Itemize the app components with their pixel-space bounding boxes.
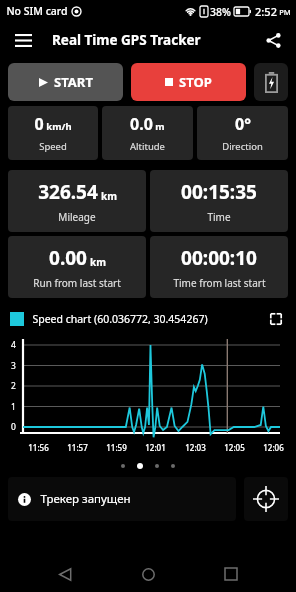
staticText: 1 [11,401,16,413]
button[interactable]: Back [47,556,83,592]
staticText: 12:03 [185,442,206,453]
button[interactable]: Battery optimization [254,63,288,101]
staticText: km [101,189,117,203]
button[interactable]: 0.0 [102,106,193,160]
button[interactable]: Трекер запущен [8,477,236,521]
staticText: 12:06 [263,442,284,453]
staticText: STOP [179,73,212,91]
staticText: 0° [235,113,251,135]
staticText: Real Time GPS Tracker [52,31,201,49]
staticText: PM [279,7,291,17]
button[interactable]: My location [244,477,288,521]
button[interactable]: 0° [197,106,288,160]
staticText: 0.0 [130,113,153,135]
button[interactable]: START [8,63,123,101]
staticText: 2 [11,380,16,392]
staticText: 4 [11,339,16,351]
staticText: No SIM card [6,4,68,18]
button[interactable]: Recents [213,556,249,592]
button[interactable]: 0.00 [8,236,146,298]
staticText: Time [207,210,231,224]
button[interactable]: Home [130,556,166,592]
staticText: START [54,73,93,91]
staticText: 3 [11,360,16,372]
staticText: Time from last start [173,276,266,290]
button[interactable]: 00:15:35 [150,170,288,232]
staticText: 0.00 [49,245,87,271]
staticText: 11:57 [67,442,88,453]
staticText: Speed chart (60.036772, 30.454267) [32,312,208,326]
staticText: 326.54 [38,179,98,205]
staticText: 00:00:10 [181,245,257,271]
staticText: 11:59 [106,442,127,453]
staticText: Run from last start [33,276,121,290]
button[interactable]: 00:00:10 [150,236,288,298]
staticText: Mileage [58,210,96,224]
button[interactable]: Menu [8,25,38,55]
staticText: Altitude [130,140,165,153]
staticText: Трекер запущен [40,491,131,507]
staticText: 38% [210,5,231,19]
staticText: km [90,255,106,269]
staticText: km/h [46,120,72,133]
staticText: 11:56 [28,442,49,453]
staticText: 12:01 [145,442,166,453]
staticText: 0 [11,421,16,433]
staticText: 2:52 [255,4,277,19]
button[interactable]: 326.54 [8,170,146,232]
staticText: 00:15:35 [181,179,257,205]
button[interactable]: STOP [131,63,246,101]
staticText: 0 [34,113,44,135]
button[interactable]: 0 [8,106,98,160]
button[interactable]: Fullscreen [266,309,286,329]
staticText: m [155,120,165,133]
staticText: Speed [39,140,67,153]
button[interactable]: Share [258,25,288,55]
staticText: Direction [222,140,263,153]
staticText: 12:05 [224,442,245,453]
